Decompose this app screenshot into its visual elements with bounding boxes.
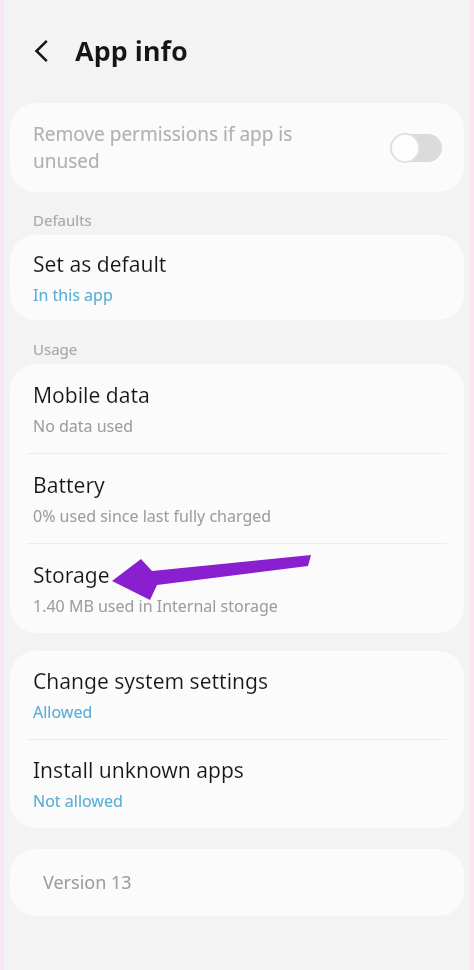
staticText: In this app <box>33 284 113 306</box>
staticText: App info <box>75 32 188 69</box>
button[interactable]: Change system settings <box>10 651 464 739</box>
staticText: Allowed <box>33 701 93 723</box>
button[interactable]: Back <box>21 30 63 72</box>
staticText: Defaults <box>33 210 92 230</box>
staticText: Version 13 <box>43 870 132 895</box>
staticText: Not allowed <box>33 790 123 812</box>
button[interactable]: Mobile data <box>10 364 464 453</box>
button[interactable]: Storage <box>10 544 464 633</box>
staticText: Usage <box>33 339 78 359</box>
button[interactable]: Battery <box>10 454 464 543</box>
staticText: Change system settings <box>33 667 269 696</box>
staticText: Battery <box>33 471 105 500</box>
staticText: Mobile data <box>33 381 150 410</box>
staticText: 1.40 MB used in Internal storage <box>33 595 278 617</box>
staticText: Storage <box>33 561 110 590</box>
staticText: Set as default <box>33 250 167 279</box>
staticText: No data used <box>33 415 134 437</box>
button[interactable]: Set as default <box>10 235 464 320</box>
button[interactable]: Install unknown apps <box>10 740 464 828</box>
staticText: 0% used since last fully charged <box>33 505 272 527</box>
button[interactable]: Version 13 <box>10 849 464 916</box>
staticText: Remove permissions if app is unused <box>33 121 384 174</box>
button[interactable]: Remove permissions if app is unused <box>10 103 464 192</box>
staticText: Install unknown apps <box>33 756 244 785</box>
